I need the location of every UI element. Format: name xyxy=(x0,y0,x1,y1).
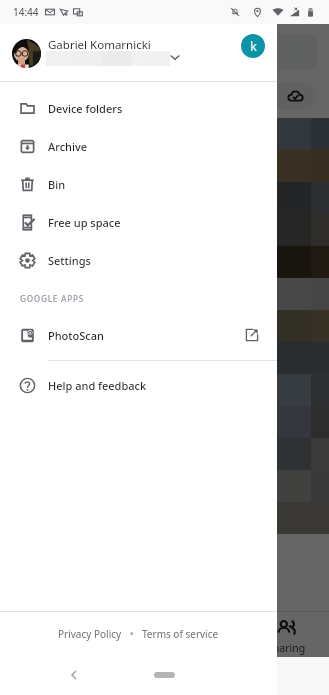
button[interactable]: Gabriel Komarnicki xyxy=(0,26,277,81)
button[interactable]: Home xyxy=(154,672,175,678)
staticText: Settings xyxy=(48,253,91,268)
button[interactable]: Terms of service xyxy=(142,627,219,641)
staticText: Free up space xyxy=(48,215,121,230)
button[interactable]: Free up space xyxy=(0,203,277,241)
button[interactable]: k xyxy=(241,34,265,58)
staticText: 14:44 xyxy=(13,5,39,19)
button[interactable]: Help and feedback xyxy=(0,366,277,404)
button[interactable]: Device folders xyxy=(0,89,277,127)
staticText: Bin xyxy=(48,177,66,192)
button[interactable]: Settings xyxy=(0,241,277,279)
other: Backup complete xyxy=(287,88,304,105)
staticText: Gabriel Komarnicki xyxy=(48,37,151,53)
button[interactable]: PhotoScan xyxy=(0,316,277,354)
button[interactable]: Bin xyxy=(0,165,277,203)
staticText: Sharing xyxy=(267,641,306,655)
staticText: Device folders xyxy=(48,101,123,116)
staticText: • xyxy=(122,627,142,641)
button[interactable]: Privacy Policy xyxy=(58,627,122,641)
staticText: PhotoScan xyxy=(48,328,104,343)
staticText: k xyxy=(250,37,257,55)
button[interactable]: Archive xyxy=(0,127,277,165)
button[interactable]: Back xyxy=(67,668,81,682)
staticText: Help and feedback xyxy=(48,378,147,393)
button[interactable]: Backup complete xyxy=(196,83,316,109)
staticText: Archive xyxy=(48,139,88,154)
staticText: GOOGLE APPS xyxy=(20,293,84,304)
